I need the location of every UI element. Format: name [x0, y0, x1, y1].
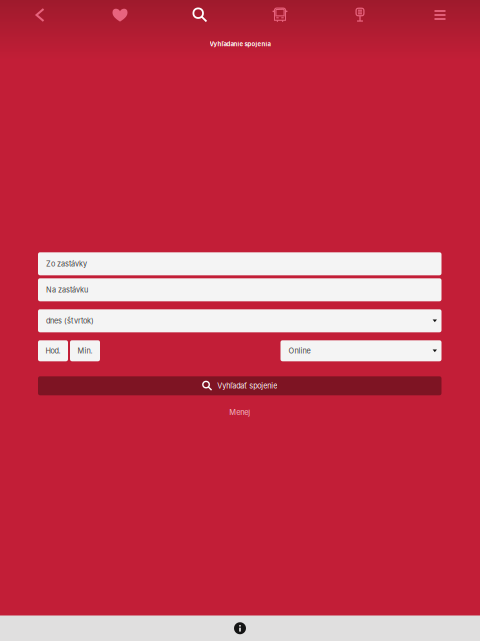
staticText: Vyhľadať spojenie [217, 381, 277, 390]
button[interactable]: Na zastávku [38, 278, 441, 301]
button[interactable]: Tickets [320, 0, 400, 30]
staticText: Vyhľadanie spojenia [209, 40, 270, 48]
staticText: Online [288, 346, 310, 355]
button[interactable]: Zo zastávky [38, 252, 441, 275]
button[interactable]: Hod. [38, 340, 68, 361]
button[interactable]: Information [0, 615, 480, 641]
button[interactable]: Search [160, 0, 240, 30]
staticText: Zo zastávky [46, 259, 87, 268]
staticText: Hod. [45, 346, 60, 355]
button[interactable]: Vyhľadať spojenie [38, 376, 441, 395]
staticText: Min. [77, 346, 92, 355]
button[interactable]: Favourites [80, 0, 160, 30]
button[interactable]: Back [0, 0, 80, 30]
button[interactable]: Menu [400, 0, 480, 30]
button[interactable]: Min. [70, 340, 100, 361]
button[interactable]: Departures [240, 0, 320, 30]
button[interactable]: dnes (štvrtok) [38, 309, 441, 332]
staticText: Menej [229, 408, 250, 417]
button[interactable]: Online [280, 340, 441, 361]
staticText: dnes (štvrtok) [46, 316, 94, 325]
staticText: Na zastávku [46, 285, 88, 294]
button[interactable]: Menej [38, 405, 441, 419]
